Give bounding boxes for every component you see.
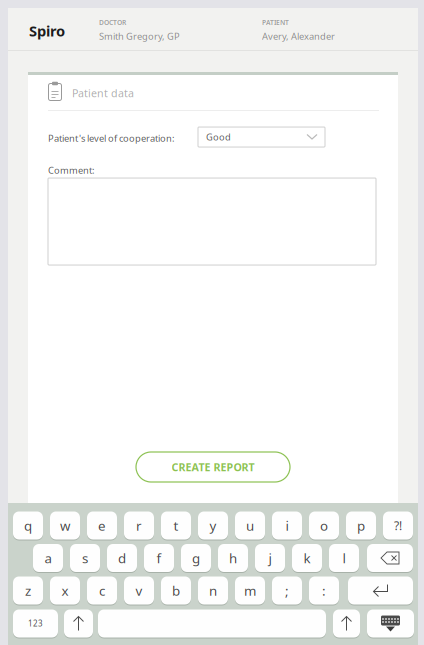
staticText: m [244, 582, 256, 599]
staticText: s [82, 549, 88, 567]
button[interactable] [367, 609, 414, 638]
button[interactable]: u [235, 511, 265, 540]
staticText: z [25, 582, 31, 599]
button[interactable] [64, 609, 93, 638]
button[interactable]: s [70, 543, 100, 572]
button[interactable]: 123 [13, 609, 58, 638]
button[interactable]: y [198, 511, 228, 540]
staticText: Spiro [29, 21, 65, 40]
button[interactable]: i [272, 511, 302, 540]
button[interactable]: ?! [383, 511, 413, 540]
staticText: e [98, 517, 106, 534]
staticText: r [136, 517, 142, 534]
button[interactable]: e [87, 511, 117, 540]
button[interactable] [348, 576, 413, 605]
staticText: p [357, 517, 365, 534]
button[interactable] [333, 609, 360, 638]
staticText: Smith Gregory, GP [99, 30, 180, 42]
staticText: CREATE REPORT [171, 460, 254, 474]
button[interactable]: g [181, 543, 211, 572]
button[interactable]: Good [198, 127, 325, 147]
button[interactable]: b [161, 576, 191, 605]
button[interactable]: l [329, 543, 359, 572]
staticText: w [60, 517, 70, 534]
staticText: c [99, 582, 105, 599]
staticText: d [118, 549, 126, 567]
staticText: Patient data [72, 86, 134, 100]
staticText: Avery, Alexander [262, 30, 335, 42]
staticText: k [303, 549, 310, 567]
staticText: Patient's level of cooperation: [48, 132, 175, 144]
button[interactable]: d [107, 543, 137, 572]
staticText: l [342, 549, 345, 567]
staticText: q [24, 517, 32, 534]
button[interactable]: ; [272, 576, 302, 605]
button[interactable]: v [124, 576, 154, 605]
staticText: n [209, 582, 217, 599]
button[interactable]: o [309, 511, 339, 540]
button[interactable]: j [255, 543, 285, 572]
button[interactable]: z [13, 576, 43, 605]
staticText: a [44, 549, 51, 567]
staticText: DOCTOR [99, 18, 126, 27]
button[interactable]: : [309, 576, 339, 605]
staticText: : [322, 582, 326, 599]
button[interactable]: x [50, 576, 80, 605]
button[interactable]: t [161, 511, 191, 540]
button[interactable] [98, 609, 326, 638]
button[interactable]: p [346, 511, 376, 540]
staticText: y [209, 517, 216, 534]
staticText: i [285, 517, 288, 534]
staticText: x [61, 582, 68, 599]
staticText: v [135, 582, 142, 599]
staticText: ; [285, 582, 289, 599]
staticText: b [172, 582, 180, 599]
button[interactable]: h [218, 543, 248, 572]
button[interactable]: c [87, 576, 117, 605]
button[interactable] [367, 543, 413, 572]
staticText: Good [206, 131, 231, 143]
button[interactable]: a [33, 543, 63, 572]
button[interactable]: m [235, 576, 265, 605]
staticText: f [156, 549, 161, 567]
staticText: g [192, 549, 200, 567]
button[interactable]: q [13, 511, 43, 540]
staticText: o [320, 517, 328, 534]
staticText: ?! [394, 517, 402, 533]
button[interactable]: r [124, 511, 154, 540]
staticText: h [229, 549, 237, 567]
staticText: u [246, 517, 254, 534]
staticText: 123 [28, 618, 43, 629]
staticText: t [173, 517, 178, 534]
staticText: Comment: [48, 164, 95, 176]
button[interactable]: CREATE REPORT [136, 452, 290, 482]
button[interactable]: w [50, 511, 80, 540]
button[interactable]: n [198, 576, 228, 605]
staticText: PATIENT [262, 18, 289, 27]
button[interactable]: f [144, 543, 174, 572]
button[interactable]: k [292, 543, 322, 572]
staticText: j [268, 549, 271, 567]
